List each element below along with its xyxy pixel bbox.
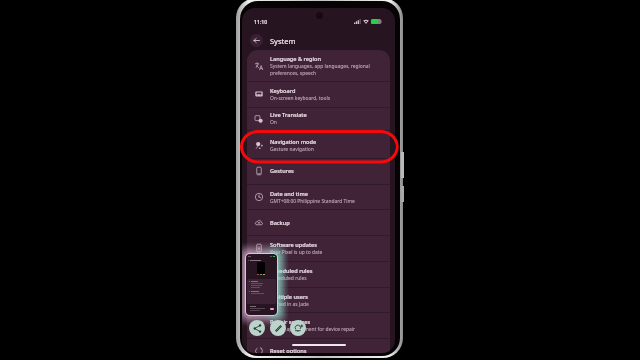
button[interactable]: Software updates	[247, 235, 390, 261]
button[interactable]: Multiple users	[247, 287, 390, 313]
staticText: Live Translate	[270, 111, 307, 119]
staticText: Get an appointment for device repair	[270, 326, 355, 333]
staticText: System languages, app languages, regiona…	[270, 63, 370, 70]
button[interactable]: Navigation mode	[247, 131, 390, 159]
button[interactable]: Live Translate	[247, 107, 390, 130]
staticText: Language & region	[270, 55, 321, 63]
button[interactable]: Scheduled rules	[247, 261, 390, 287]
staticText: On-screen keyboard, tools	[270, 95, 331, 102]
button[interactable]: Edit	[270, 320, 286, 336]
button[interactable]: Reset options	[247, 338, 390, 353]
staticText: Software updates	[270, 241, 317, 249]
button[interactable]: Share	[249, 320, 265, 336]
staticText: preferences, speech	[270, 70, 317, 77]
staticText: Your Pixel is up to date	[270, 249, 323, 256]
staticText: Scheduled rules	[270, 275, 307, 282]
button[interactable]: Screenshot preview	[246, 254, 277, 315]
staticText: Signed in as Jade	[270, 301, 309, 308]
staticText: Date and time	[270, 190, 308, 198]
staticText: GMT+08:00 Philippine Standard Time	[270, 198, 355, 205]
button[interactable]: Backup	[247, 210, 390, 236]
staticText: On	[270, 119, 277, 126]
staticText: Multiple users	[270, 293, 308, 301]
button[interactable]: Repair services	[247, 312, 390, 338]
button[interactable]: Back	[250, 34, 263, 47]
staticText: Scheduled rules	[270, 267, 313, 275]
staticText: Navigation mode	[270, 138, 317, 146]
staticText: 11:10	[254, 18, 268, 25]
button[interactable]: Language & region	[247, 50, 390, 81]
button[interactable]: Date and time	[247, 184, 390, 210]
button[interactable]: Gestures	[247, 158, 390, 184]
staticText: Backup	[270, 219, 290, 227]
staticText: Gesture navigation	[270, 146, 314, 153]
staticText: System	[270, 36, 296, 46]
button[interactable]: Keyboard	[247, 81, 390, 107]
staticText: Reset options	[270, 347, 307, 353]
staticText: Repair services	[270, 318, 311, 326]
button[interactable]: Add to album	[290, 320, 306, 336]
staticText: Keyboard	[270, 87, 296, 95]
staticText: Gestures	[270, 167, 294, 175]
